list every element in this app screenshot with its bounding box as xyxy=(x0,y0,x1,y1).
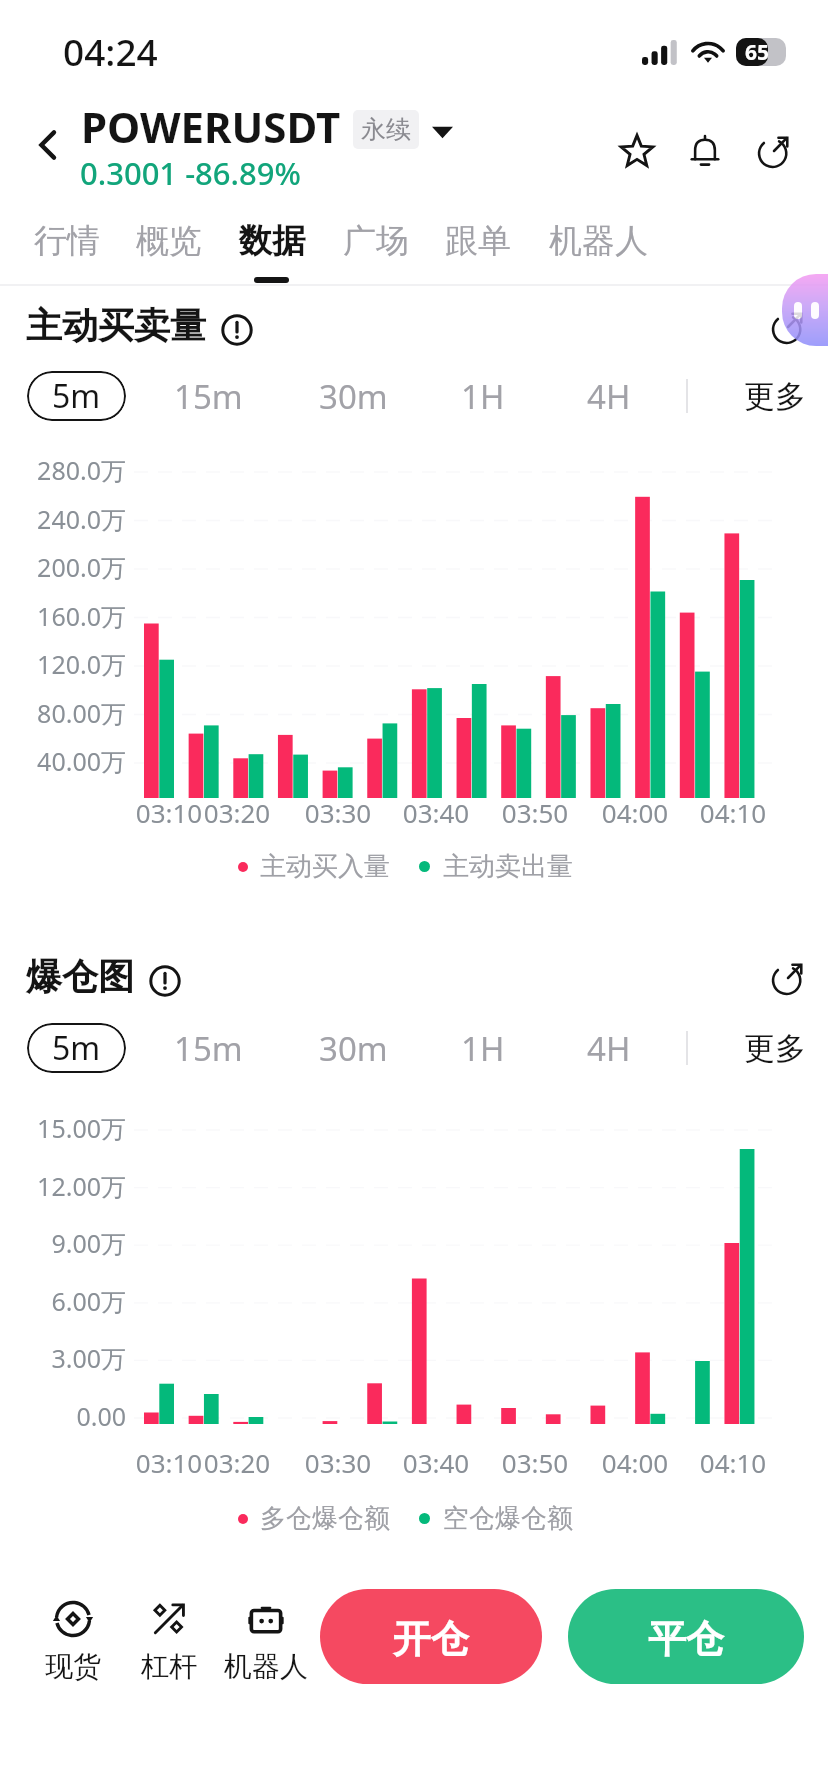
button[interactable]: Assistant xyxy=(782,274,828,346)
staticText: 5m xyxy=(52,1026,101,1070)
staticText: 0.3001 -86.89% xyxy=(80,152,301,194)
staticText: 04:00 xyxy=(585,1445,685,1480)
staticText: 200.0万 xyxy=(0,550,126,584)
staticText: 杠杆 xyxy=(141,1649,197,1684)
button[interactable]: 30m xyxy=(305,371,402,421)
button[interactable]: 跟单 xyxy=(431,212,525,278)
button[interactable]: 5m xyxy=(27,1023,126,1073)
button[interactable]: 30m xyxy=(305,1023,402,1073)
staticText: 爆仓图 xyxy=(26,954,134,999)
staticText: 现货 xyxy=(45,1649,101,1684)
staticText: 主动买卖量 xyxy=(26,303,206,348)
staticText: 03:20 xyxy=(187,1445,287,1480)
button[interactable]: 15m xyxy=(160,1023,257,1073)
staticText: 更多 xyxy=(744,377,806,416)
staticText: 03:10 xyxy=(119,1445,219,1480)
button[interactable]: Spot xyxy=(17,1600,129,1684)
staticText: 概览 xyxy=(136,220,202,262)
staticText: 04:10 xyxy=(683,795,783,830)
staticText: 3.00万 xyxy=(0,1341,126,1375)
staticText: 永续 xyxy=(361,114,411,145)
staticText: 空仓爆仓额 xyxy=(443,1502,573,1535)
staticText: 03:30 xyxy=(288,1445,388,1480)
button[interactable]: Open full chart xyxy=(756,947,818,1009)
staticText: 多仓爆仓额 xyxy=(260,1502,390,1535)
button[interactable]: 概览 xyxy=(122,212,216,278)
staticText: 40.00万 xyxy=(0,744,126,778)
staticText: 03:40 xyxy=(386,795,486,830)
button[interactable]: 更多 xyxy=(744,371,806,421)
button[interactable]: 4H xyxy=(573,1023,645,1073)
staticText: 更多 xyxy=(744,1029,806,1068)
button[interactable]: 开仓 xyxy=(320,1589,542,1684)
staticText: 0.00 xyxy=(0,1399,126,1433)
button[interactable]: 平仓 xyxy=(568,1589,804,1684)
staticText: 机器人 xyxy=(224,1649,308,1684)
staticText: 5m xyxy=(52,374,101,418)
staticText: 15m xyxy=(174,1026,243,1071)
staticText: 03:30 xyxy=(288,795,388,830)
button[interactable]: Back xyxy=(16,106,80,184)
staticText: 280.0万 xyxy=(0,453,126,487)
staticText: 机器人 xyxy=(549,220,648,262)
staticText: 240.0万 xyxy=(0,502,126,536)
staticText: 03:50 xyxy=(485,1445,585,1480)
staticText: 开仓 xyxy=(393,1615,469,1663)
staticText: 120.0万 xyxy=(0,647,126,681)
staticText: 03:20 xyxy=(187,795,287,830)
button[interactable]: Notifications xyxy=(671,117,739,185)
staticText: 数据 xyxy=(239,220,305,262)
staticText: 30m xyxy=(319,374,388,419)
staticText: 03:40 xyxy=(386,1445,486,1480)
staticText: POWERUSDT xyxy=(81,98,341,155)
button[interactable]: 1H xyxy=(447,1023,519,1073)
button[interactable]: 广场 xyxy=(329,212,423,278)
staticText: 80.00万 xyxy=(0,696,126,730)
staticText: 4H xyxy=(587,374,631,419)
staticText: 9.00万 xyxy=(0,1226,126,1260)
staticText: 主动买入量 xyxy=(260,850,390,883)
button[interactable]: 4H xyxy=(573,371,645,421)
staticText: 04:10 xyxy=(683,1445,783,1480)
staticText: 160.0万 xyxy=(0,599,126,633)
staticText: 行情 xyxy=(34,220,100,262)
staticText: 15.00万 xyxy=(0,1111,126,1145)
button[interactable]: 1H xyxy=(447,371,519,421)
button[interactable]: 行情 xyxy=(20,212,114,278)
staticText: 主动卖出量 xyxy=(443,850,573,883)
staticText: 平仓 xyxy=(648,1615,724,1663)
staticText: 65 xyxy=(745,38,770,66)
staticText: 04:00 xyxy=(585,795,685,830)
staticText: 6.00万 xyxy=(0,1284,126,1318)
staticText: 广场 xyxy=(343,220,409,262)
button[interactable]: 15m xyxy=(160,371,257,421)
staticText: 跟单 xyxy=(445,220,511,262)
staticText: 12.00万 xyxy=(0,1169,126,1203)
staticText: 15m xyxy=(174,374,243,419)
button[interactable]: Leverage xyxy=(113,1600,225,1684)
staticText: 03:50 xyxy=(485,795,585,830)
button[interactable]: Favorite xyxy=(603,117,671,185)
button[interactable]: Open full chart xyxy=(756,296,818,358)
button[interactable]: 数据 xyxy=(225,212,319,278)
staticText: 30m xyxy=(319,1026,388,1071)
button[interactable]: 5m xyxy=(27,371,126,421)
button[interactable]: Bot xyxy=(210,1600,322,1684)
staticText: 1H xyxy=(461,1026,505,1071)
staticText: 1H xyxy=(461,374,505,419)
staticText: 03:10 xyxy=(119,795,219,830)
staticText: 4H xyxy=(587,1026,631,1071)
staticText: 04:24 xyxy=(63,26,158,76)
button[interactable]: 机器人 xyxy=(535,212,662,278)
button[interactable]: Share xyxy=(739,117,807,185)
button[interactable]: 更多 xyxy=(744,1023,806,1073)
